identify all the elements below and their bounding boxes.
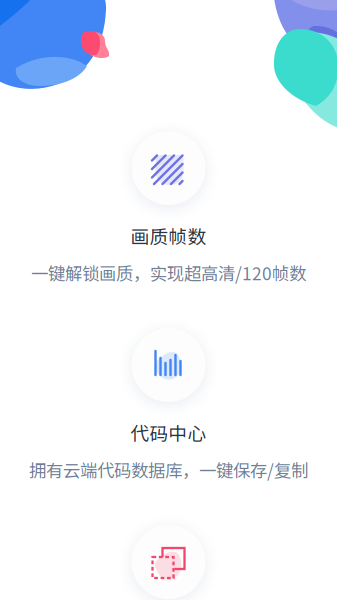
button[interactable]: 资源下载: [0, 522, 337, 600]
staticText: 画质帧数: [130, 222, 206, 249]
button[interactable]: 画质帧数: [0, 128, 337, 308]
staticText: 拥有云端代码数据库，一键保存/复制: [29, 457, 308, 482]
staticText: 代码中心: [130, 419, 206, 446]
button[interactable]: 代码中心: [0, 325, 337, 505]
staticText: 一键解锁画质，实现超高清/120帧数: [31, 260, 306, 285]
